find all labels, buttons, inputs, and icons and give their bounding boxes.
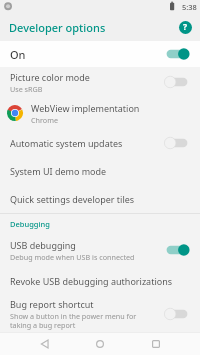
button[interactable]: On	[0, 41, 200, 67]
button[interactable]: Toggle off	[164, 306, 190, 322]
button[interactable]: Quick settings developer tiles	[0, 185, 200, 213]
staticText: Automatic system updates	[10, 137, 123, 149]
staticText: Show a button in the power menu for taki…	[10, 311, 137, 330]
staticText: WebView implementation	[31, 102, 140, 114]
staticText: Developer options	[9, 20, 106, 35]
button[interactable]: WebView implementation	[0, 97, 200, 129]
button[interactable]: Picture color mode	[0, 67, 200, 97]
button[interactable]: Help	[176, 18, 194, 36]
staticText: Debug mode when USB is connected	[10, 252, 135, 262]
button[interactable]: Bug report shortcut	[0, 296, 200, 332]
button[interactable]: Toggle off	[164, 135, 190, 151]
button[interactable]: Revoke USB debugging authorizations	[0, 266, 200, 296]
button[interactable]: USB debugging	[0, 234, 200, 266]
staticText: Bug report shortcut	[10, 298, 94, 310]
button[interactable]: Toggle on	[164, 242, 190, 258]
staticText: On	[10, 47, 164, 62]
staticText: Chrome	[31, 115, 58, 125]
staticText: Picture color mode	[10, 71, 90, 83]
button[interactable]: Back	[34, 333, 56, 355]
button[interactable]: Toggle off	[164, 74, 190, 90]
staticText: Quick settings developer tiles	[10, 193, 135, 205]
staticText: ?	[183, 21, 188, 33]
button[interactable]: Automatic system updates	[0, 129, 200, 157]
button[interactable]: Home	[89, 333, 111, 355]
button[interactable]: System UI demo mode	[0, 157, 200, 185]
button[interactable]: Recent apps	[145, 333, 167, 355]
staticText: System UI demo mode	[10, 165, 107, 177]
staticText: Revoke USB debugging authorizations	[10, 275, 173, 287]
staticText: Debugging	[10, 219, 50, 229]
staticText: Use sRGB	[10, 84, 43, 94]
button[interactable]: Toggle on	[164, 46, 190, 62]
staticText: USB debugging	[10, 239, 76, 251]
staticText: 5:38	[182, 2, 197, 12]
